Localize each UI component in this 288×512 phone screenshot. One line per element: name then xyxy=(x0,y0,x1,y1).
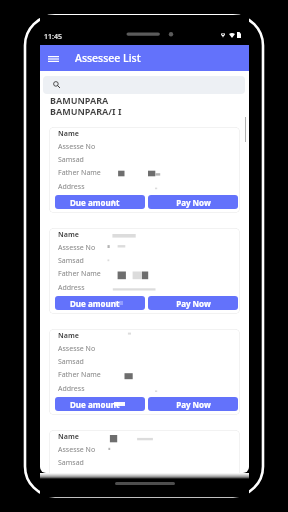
staticText: Assesse No xyxy=(58,445,96,455)
staticText: Due amount xyxy=(70,399,120,410)
staticText: Father Name xyxy=(58,370,101,380)
staticText: Father Name xyxy=(58,168,101,178)
staticText: BAMUNPARA/I I xyxy=(50,105,122,117)
button[interactable]: Pay Now xyxy=(148,397,238,411)
staticText: Pay Now xyxy=(176,399,211,410)
staticText: Name xyxy=(58,230,79,240)
staticText: Assesse No xyxy=(58,243,96,253)
button[interactable]: Search xyxy=(43,76,245,94)
staticText: Pay Now xyxy=(176,298,211,309)
staticText: Samsad xyxy=(58,458,84,468)
button[interactable]: Name xyxy=(49,430,240,473)
staticText: Name xyxy=(58,129,79,139)
button[interactable]: Pay Now xyxy=(148,296,238,310)
staticText: Father Name xyxy=(58,269,101,279)
button[interactable]: Name xyxy=(49,127,240,213)
staticText: Address xyxy=(58,384,85,394)
staticText: Due amount xyxy=(70,298,120,309)
staticText: Assesse No xyxy=(58,344,96,354)
button[interactable]: Due amount xyxy=(55,296,145,310)
staticText: BAMUNPARA xyxy=(50,94,109,106)
staticText: Name xyxy=(58,432,79,442)
button[interactable]: Pay Now xyxy=(148,195,238,209)
staticText: Assessee List xyxy=(75,51,141,65)
button[interactable]: Name xyxy=(49,329,240,415)
staticText: Pay Now xyxy=(176,197,211,208)
staticText: Address xyxy=(58,182,85,192)
staticText: Address xyxy=(58,283,85,293)
staticText: Due amount xyxy=(70,197,120,208)
button[interactable]: Due amount xyxy=(55,397,145,411)
button[interactable]: Open navigation menu xyxy=(43,48,64,69)
staticText: Samsad xyxy=(58,357,84,367)
staticText: Assesse No xyxy=(58,142,96,152)
staticText: 11:45 xyxy=(44,32,62,42)
button[interactable]: Name xyxy=(49,228,240,314)
staticText: Samsad xyxy=(58,256,84,266)
staticText: Name xyxy=(58,331,79,341)
staticText: Samsad xyxy=(58,155,84,165)
button[interactable]: Due amount xyxy=(55,195,145,209)
